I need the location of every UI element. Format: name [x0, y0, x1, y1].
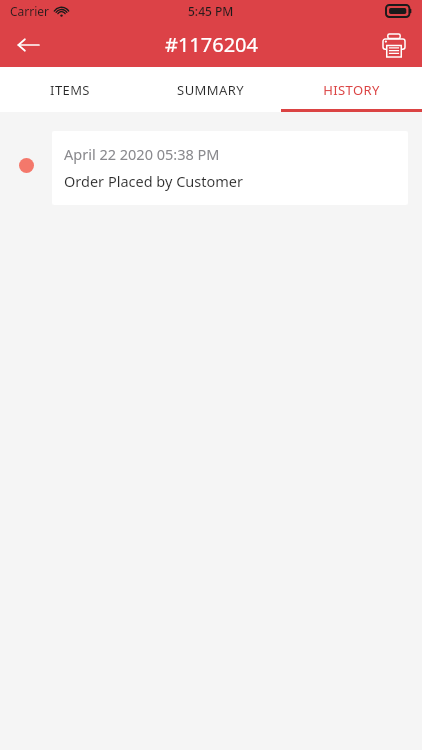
- button[interactable]: ITEMS: [0, 67, 140, 112]
- button[interactable]: Print: [374, 25, 414, 65]
- staticText: Order Placed by Customer: [64, 171, 243, 191]
- staticText: April 22 2020 05:38 PM: [64, 144, 220, 164]
- staticText: 5:45 PM: [188, 3, 234, 19]
- button[interactable]: SUMMARY: [140, 67, 281, 112]
- staticText: Carrier: [10, 3, 50, 19]
- staticText: SUMMARY: [177, 81, 244, 99]
- staticText: HISTORY: [323, 81, 380, 99]
- button[interactable]: HISTORY: [281, 67, 422, 112]
- staticText: #1176204: [165, 31, 258, 58]
- button[interactable]: Back: [8, 25, 48, 65]
- staticText: ITEMS: [50, 81, 90, 99]
- button[interactable]: April 22 2020 05:38 PM: [52, 131, 408, 205]
